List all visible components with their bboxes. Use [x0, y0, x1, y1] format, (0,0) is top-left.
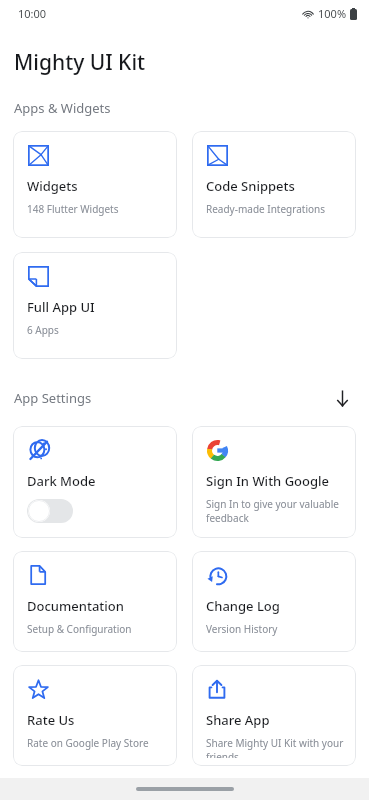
button[interactable]: Rate Us [13, 665, 177, 766]
staticText: Mighty UI Kit [14, 48, 146, 77]
staticText: Rate on Google Play Store [27, 736, 149, 750]
staticText: Full App UI [27, 298, 95, 316]
button[interactable]: Widgets [13, 131, 177, 238]
button[interactable]: Change Log [192, 551, 356, 652]
staticText: Ready-made Integrations [206, 202, 326, 216]
staticText: 10:00 [18, 6, 47, 21]
button[interactable]: Sign In With Google [192, 426, 356, 538]
button[interactable]: Full App UI [13, 252, 177, 359]
staticText: 6 Apps [27, 323, 59, 337]
staticText: Share App [206, 711, 270, 729]
button[interactable]: Dark Mode toggle [27, 499, 73, 523]
button[interactable]: Share App [192, 665, 356, 766]
button[interactable]: Dark Mode [13, 426, 177, 538]
staticText: Apps & Widgets [14, 99, 111, 117]
staticText: Share Mighty UI Kit with your friends [206, 736, 346, 758]
staticText: Dark Mode [27, 472, 96, 490]
staticText: Sign In With Google [206, 472, 330, 490]
button[interactable]: Code Snippets [192, 131, 356, 238]
staticText: 148 Flutter Widgets [27, 202, 119, 216]
staticText: Sign In to give your valuable feedback [206, 497, 346, 525]
staticText: Rate Us [27, 711, 75, 729]
staticText: Widgets [27, 177, 78, 195]
staticText: App Settings [14, 389, 92, 407]
staticText: Change Log [206, 597, 280, 615]
button[interactable]: Documentation [13, 551, 177, 652]
staticText: 100% [318, 6, 347, 21]
staticText: Code Snippets [206, 177, 295, 195]
button[interactable]: Collapse App Settings [329, 385, 355, 411]
staticText: Version History [206, 622, 278, 636]
staticText: Documentation [27, 597, 124, 615]
staticText: Setup & Configuration [27, 622, 132, 636]
